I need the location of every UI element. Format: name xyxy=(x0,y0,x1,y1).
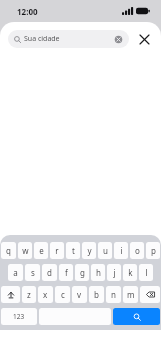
staticText: q xyxy=(6,245,11,256)
button[interactable]: d xyxy=(42,264,57,281)
button[interactable]: p xyxy=(146,242,160,259)
staticText: g xyxy=(80,267,85,278)
button[interactable]: v xyxy=(72,286,87,303)
staticText: k xyxy=(128,267,133,278)
button[interactable]: y xyxy=(82,242,96,259)
button[interactable]: a xyxy=(8,264,23,281)
button[interactable]: s xyxy=(25,264,40,281)
button[interactable]: e xyxy=(34,242,48,259)
staticText: 123 xyxy=(13,312,25,321)
staticText: b xyxy=(94,289,99,300)
staticText: Sua cidade xyxy=(24,34,114,44)
button[interactable]: o xyxy=(130,242,144,259)
button[interactable]: m xyxy=(123,286,138,303)
button[interactable]: Sua cidade xyxy=(8,30,129,48)
staticText: a xyxy=(13,267,18,278)
staticText: d xyxy=(47,267,52,278)
staticText: y xyxy=(87,245,92,256)
button[interactable]: t xyxy=(66,242,80,259)
staticText: f xyxy=(65,267,68,278)
button[interactable]: r xyxy=(50,242,64,259)
staticText: p xyxy=(151,245,156,256)
staticText: c xyxy=(61,289,65,300)
staticText: t xyxy=(72,245,75,256)
button[interactable]: Fechar xyxy=(135,30,153,48)
button[interactable]: Shift xyxy=(1,286,20,303)
staticText: o xyxy=(135,245,140,256)
button[interactable]: k xyxy=(123,264,137,281)
staticText: e xyxy=(39,245,44,256)
staticText: h xyxy=(96,267,101,278)
button[interactable]: Pesquisar xyxy=(113,308,160,325)
button[interactable]: q xyxy=(1,242,16,259)
button[interactable]: w xyxy=(18,242,32,259)
button[interactable]: z xyxy=(22,286,36,303)
button[interactable]: u xyxy=(98,242,112,259)
staticText: 12:00 xyxy=(17,6,38,17)
button[interactable]: l xyxy=(139,264,153,281)
staticText: l xyxy=(145,267,148,278)
staticText: r xyxy=(55,245,59,256)
button[interactable]: g xyxy=(75,264,89,281)
button[interactable]: i xyxy=(114,242,128,259)
button[interactable]: 123 xyxy=(1,308,37,325)
staticText: z xyxy=(27,289,31,300)
staticText: n xyxy=(111,289,116,300)
staticText: v xyxy=(77,289,82,300)
button[interactable]: x xyxy=(38,286,53,303)
staticText: w xyxy=(22,245,29,256)
staticText: m xyxy=(127,289,135,300)
button[interactable]: n xyxy=(106,286,121,303)
staticText: i xyxy=(120,245,123,256)
staticText: x xyxy=(43,289,48,300)
button[interactable]: j xyxy=(107,264,121,281)
button[interactable]: c xyxy=(55,286,70,303)
button[interactable]: Limpar xyxy=(114,35,123,44)
button[interactable]: b xyxy=(89,286,104,303)
button[interactable]: h xyxy=(91,264,105,281)
staticText: s xyxy=(31,267,35,278)
button[interactable]: Apagar xyxy=(140,286,160,303)
button[interactable]: f xyxy=(59,264,73,281)
staticText: j xyxy=(113,267,116,278)
staticText: u xyxy=(103,245,108,256)
